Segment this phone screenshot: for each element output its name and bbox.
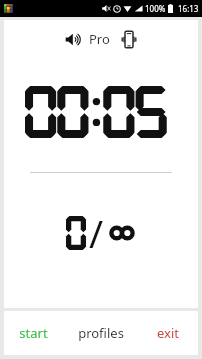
button[interactable]: Sound (61, 27, 85, 51)
staticText: start (19, 324, 48, 342)
button[interactable]: start (4, 311, 63, 355)
button[interactable]: profiles (63, 311, 138, 355)
button[interactable]: exit (138, 311, 198, 355)
button[interactable]: Vibration (117, 27, 141, 51)
button[interactable] (25, 86, 177, 138)
staticText: 100% (145, 3, 166, 14)
staticText: profiles (78, 324, 124, 342)
button[interactable]: Pro (89, 30, 110, 48)
staticText: 16:13 (178, 3, 199, 14)
staticText: exit (157, 324, 179, 342)
staticText: / (89, 207, 104, 259)
button[interactable]: / (66, 207, 137, 259)
